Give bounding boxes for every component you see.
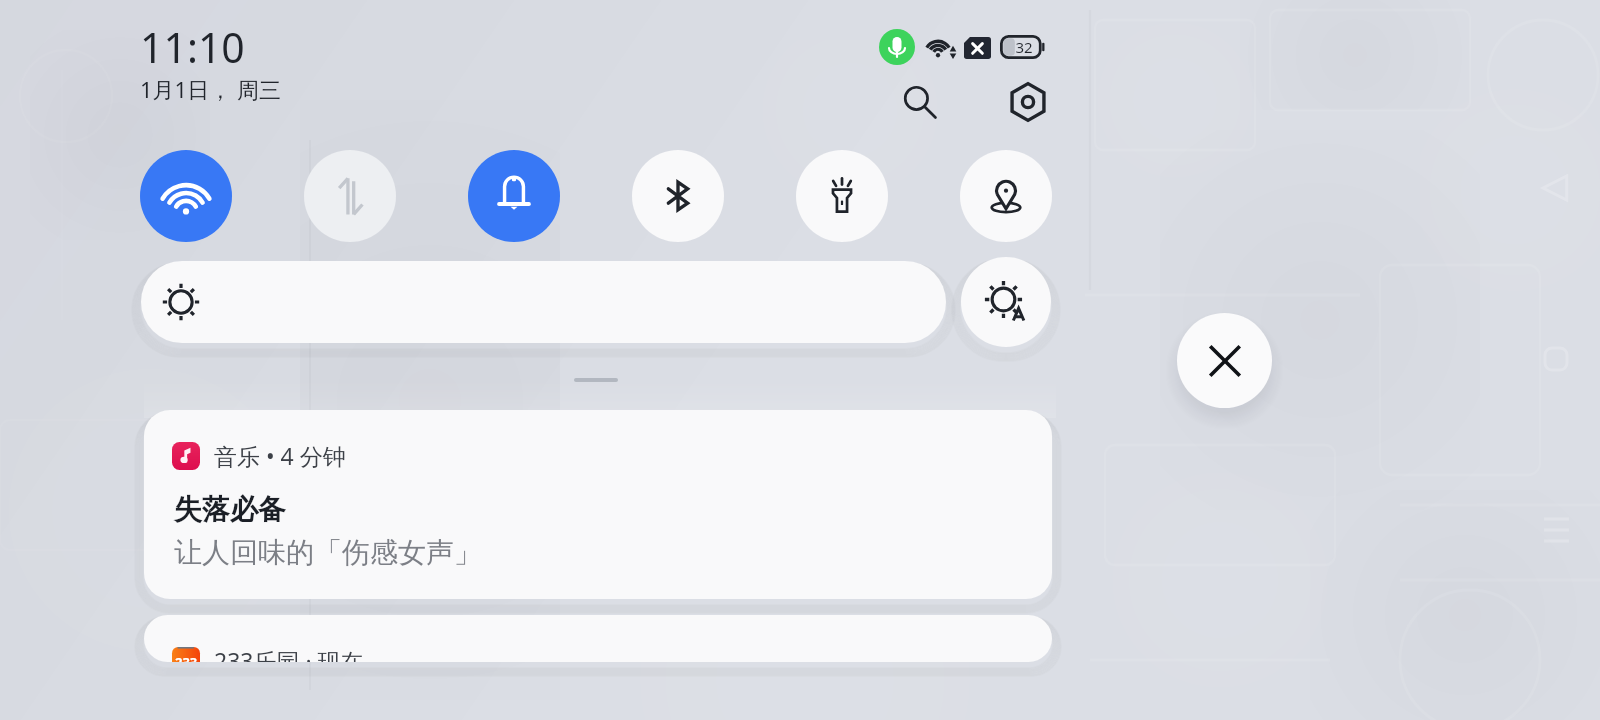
staticText: 失落必备 xyxy=(174,492,286,527)
staticText: 233乐园 · 现在 xyxy=(214,645,364,662)
button[interactable]: Location xyxy=(960,150,1052,242)
button[interactable]: 音乐 • 4 分钟 xyxy=(144,410,1052,599)
staticText: 233 xyxy=(175,653,198,662)
staticText: 音乐 • 4 分钟 xyxy=(214,440,346,471)
button[interactable]: Brightness xyxy=(141,261,946,343)
button[interactable]: Mobile data xyxy=(304,150,396,242)
button[interactable]: Auto brightness xyxy=(961,257,1051,347)
button[interactable]: Wi-Fi xyxy=(140,150,232,242)
button[interactable]: Close xyxy=(1177,313,1272,408)
staticText: 11:10 xyxy=(140,19,245,75)
button[interactable]: Settings xyxy=(1000,74,1056,130)
button[interactable]: Ring xyxy=(468,150,560,242)
button[interactable]: 233 xyxy=(144,615,1052,662)
button[interactable]: Search xyxy=(892,74,948,130)
staticText: 32 xyxy=(1015,37,1033,57)
staticText: 让人回味的「伤感女声」 xyxy=(174,535,482,570)
button[interactable]: Bluetooth xyxy=(632,150,724,242)
staticText: 1月1日， 周三 xyxy=(140,74,281,104)
button[interactable]: Flashlight xyxy=(796,150,888,242)
